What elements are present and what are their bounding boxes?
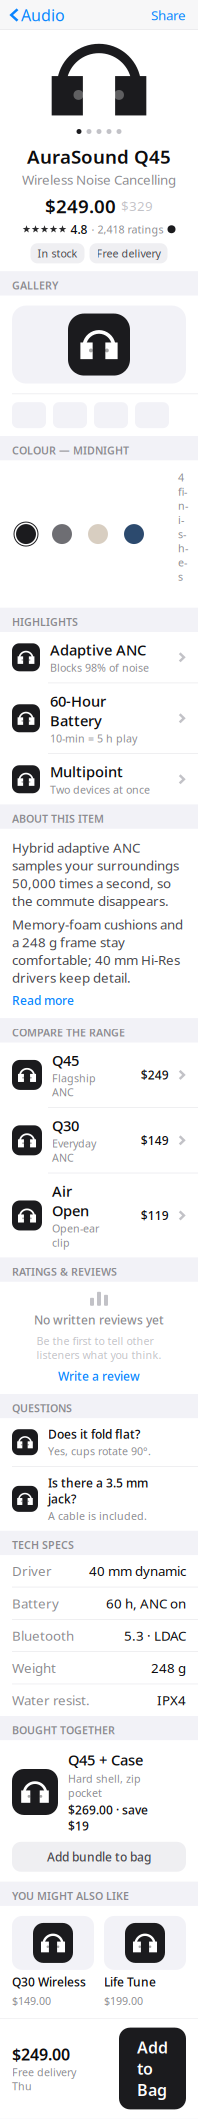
staticText: Multipoint xyxy=(50,762,123,781)
staticText: Life Tune xyxy=(104,1974,156,1990)
staticText: Does it fold flat? xyxy=(48,1426,140,1442)
staticText: 4.8 xyxy=(70,221,87,237)
button[interactable]: Colour option xyxy=(86,522,110,546)
staticText: TECH SPECS xyxy=(12,1538,74,1552)
staticText: Audio xyxy=(21,4,65,26)
staticText: COMPARE THE RANGE xyxy=(12,1025,125,1039)
staticText: 5.3 · LDAC xyxy=(124,1627,186,1644)
button[interactable]: Air Open xyxy=(0,1173,198,1258)
staticText: $329 xyxy=(121,197,153,215)
staticText: Hard shell, zip pocket xyxy=(68,1772,141,1800)
staticText: Add to Bag xyxy=(137,2037,168,2100)
button[interactable]: Adaptive ANC xyxy=(0,632,198,683)
button[interactable]: Life Tune xyxy=(104,1916,186,2008)
staticText: 10-min = 5 h play xyxy=(50,731,137,745)
button[interactable]: Q30 Wireless xyxy=(12,1916,94,2008)
staticText: Wireless Noise Cancelling xyxy=(22,171,176,188)
staticText: $149 xyxy=(141,1132,169,1148)
staticText: Open-ear clip xyxy=(52,1221,99,1250)
staticText: Flagship ANC xyxy=(52,1071,96,1099)
staticText: IPX4 xyxy=(157,1691,186,1709)
staticText: $119 xyxy=(141,1207,169,1223)
button[interactable]: Colour option xyxy=(50,522,74,546)
button[interactable]: Is there a 3.5 mm jack? xyxy=(0,1467,198,1531)
staticText: Yes, cups rotate 90°. xyxy=(48,1444,151,1458)
staticText: Be the first to tell other listeners wha… xyxy=(36,1334,161,1362)
staticText: In stock xyxy=(37,246,77,260)
staticText: $249 xyxy=(141,1067,169,1083)
staticText: Free delivery Thu xyxy=(12,2065,76,2093)
staticText: ABOUT THIS ITEM xyxy=(12,812,104,826)
staticText: Q45 + Case xyxy=(68,1750,143,1770)
button[interactable]: Q30 xyxy=(0,1108,198,1173)
staticText: Read more xyxy=(12,992,74,1008)
button[interactable]: 60-Hour Battery xyxy=(0,683,198,753)
button[interactable]: Share xyxy=(151,0,198,30)
staticText: Driver xyxy=(12,1562,52,1580)
button[interactable]: Add to Bag xyxy=(119,2028,186,2109)
staticText: $199.00 xyxy=(104,1994,143,2008)
staticText: $249.00 xyxy=(12,2044,70,2065)
button[interactable]: Read more xyxy=(12,992,74,1008)
staticText: · 2,418 ratings xyxy=(91,222,163,236)
button[interactable]: Does it fold flat? xyxy=(0,1418,198,1466)
staticText: GALLERY xyxy=(12,278,58,293)
staticText: BOUGHT TOGETHER xyxy=(12,1723,115,1737)
staticText: HIGHLIGHTS xyxy=(12,615,78,629)
staticText: Memory-foam cushions and a 248 g frame s… xyxy=(12,916,183,986)
staticText: QUESTIONS xyxy=(12,1401,72,1415)
button[interactable]: Write a review xyxy=(58,1368,140,1384)
button[interactable]: Colour option xyxy=(14,522,38,546)
staticText: Is there a 3.5 mm jack? xyxy=(48,1475,148,1507)
staticText: RATINGS & REVIEWS xyxy=(12,1265,117,1279)
staticText: No written reviews yet xyxy=(34,1312,164,1328)
button[interactable]: Add bundle to bag xyxy=(12,1842,186,1872)
staticText: COLOUR — MIDNIGHT xyxy=(12,443,129,457)
staticText: Battery xyxy=(12,1594,59,1612)
staticText: Weight xyxy=(12,1659,56,1677)
staticText: Share xyxy=(151,6,186,24)
staticText: 60 h, ANC on xyxy=(106,1594,186,1612)
staticText: AuraSound Q45 xyxy=(27,144,171,169)
staticText: Add bundle to bag xyxy=(47,1849,151,1865)
staticText: $269.00 · save $19 xyxy=(68,1802,148,1834)
staticText: Free delivery xyxy=(96,246,160,260)
staticText: Two devices at once xyxy=(50,782,150,797)
staticText: Air Open xyxy=(52,1181,89,1220)
staticText: A cable is included. xyxy=(48,1509,147,1523)
staticText: Hybrid adaptive ANC samples your surroun… xyxy=(12,839,179,910)
staticText: $149.00 xyxy=(12,1994,51,2008)
staticText: 4 finishes xyxy=(178,470,188,598)
staticText: Bluetooth xyxy=(12,1627,74,1644)
staticText: 40 mm dynamic xyxy=(89,1562,186,1580)
button[interactable]: Multipoint xyxy=(0,754,198,804)
button[interactable]: Q45 xyxy=(0,1042,198,1107)
staticText: 60-Hour Battery xyxy=(50,691,106,730)
staticText: Q30 Wireless xyxy=(12,1974,86,1990)
button[interactable]: Colour option xyxy=(122,522,146,546)
staticText: Adaptive ANC xyxy=(50,640,146,659)
button[interactable]: Audio xyxy=(0,0,65,32)
staticText: $249.00 xyxy=(45,193,116,218)
staticText: Write a review xyxy=(58,1368,140,1384)
staticText: Q45 xyxy=(52,1050,79,1070)
staticText: Everyday ANC xyxy=(52,1136,96,1165)
staticText: YOU MIGHT ALSO LIKE xyxy=(12,1889,129,1903)
staticText: Q30 xyxy=(52,1116,79,1135)
staticText: 248 g xyxy=(151,1659,186,1677)
staticText: Blocks 98% of noise xyxy=(50,660,149,675)
staticText: Water resist. xyxy=(12,1691,90,1709)
